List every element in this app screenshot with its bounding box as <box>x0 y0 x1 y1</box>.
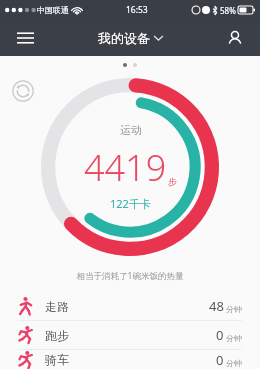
button[interactable]: 骑车 <box>0 350 260 369</box>
staticText: 4419 <box>84 143 167 192</box>
staticText: 48 <box>209 297 224 315</box>
button[interactable]: 我的设备 <box>98 30 163 46</box>
staticText: 相当于消耗了1碗米饭的热量 <box>0 270 260 282</box>
staticText: 骑车 <box>45 352 69 367</box>
staticText: 分钟 <box>226 358 242 368</box>
staticText: 0 <box>216 326 224 344</box>
staticText: 122千卡 <box>110 196 151 211</box>
staticText: 运动 <box>120 123 142 137</box>
staticText: 中国联通 <box>37 5 69 15</box>
button[interactable]: Menu <box>10 23 40 53</box>
staticText: 我的设备 <box>98 30 150 46</box>
staticText: 步 <box>168 176 177 187</box>
staticText: 0 <box>216 351 224 369</box>
staticText: 走路 <box>45 299 69 314</box>
button[interactable]: Profile <box>220 23 250 53</box>
staticText: 16:53 <box>126 4 148 16</box>
button[interactable]: Refresh <box>10 78 36 104</box>
staticText: 跑步 <box>45 328 69 343</box>
button[interactable]: 跑步 <box>0 321 260 349</box>
button[interactable]: 走路 <box>0 292 260 320</box>
staticText: 58% <box>220 5 236 16</box>
staticText: 分钟 <box>226 333 242 343</box>
staticText: 分钟 <box>226 304 242 314</box>
